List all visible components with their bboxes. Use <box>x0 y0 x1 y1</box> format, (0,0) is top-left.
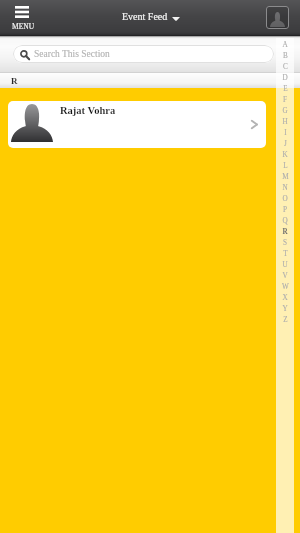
staticText: R <box>282 228 288 236</box>
staticText: P <box>283 206 287 214</box>
staticText: A <box>282 41 288 49</box>
button[interactable]: Event Feed <box>122 11 180 22</box>
staticText: S <box>283 239 287 247</box>
staticText: K <box>282 151 288 159</box>
staticText: Event Feed <box>122 11 168 22</box>
staticText: W <box>282 283 289 291</box>
staticText: C <box>283 63 288 71</box>
staticText: L <box>283 162 288 170</box>
button[interactable]: Rajat Vohra <box>8 101 266 148</box>
staticText: MENU <box>12 22 35 30</box>
staticText: O <box>282 195 288 203</box>
staticText: Q <box>282 217 288 225</box>
staticText: M <box>282 173 289 181</box>
staticText: N <box>282 184 288 192</box>
staticText: Search This Section <box>34 49 110 60</box>
staticText: X <box>282 294 288 302</box>
staticText: G <box>282 107 288 115</box>
button[interactable]: Menu <box>0 0 46 36</box>
button[interactable]: Alphabet index <box>276 38 294 533</box>
staticText: Rajat Vohra <box>60 105 116 117</box>
staticText: T <box>283 250 288 258</box>
staticText: U <box>282 261 288 269</box>
staticText: Z <box>283 316 288 324</box>
staticText: R <box>11 76 18 86</box>
staticText: H <box>282 118 288 126</box>
button[interactable]: Search This Section <box>13 45 274 63</box>
staticText: D <box>282 74 288 82</box>
staticText: I <box>284 129 287 137</box>
staticText: E <box>283 85 288 93</box>
staticText: J <box>284 140 287 148</box>
staticText: B <box>283 52 288 60</box>
staticText: F <box>283 96 287 104</box>
staticText: V <box>282 272 288 280</box>
staticText: Y <box>282 305 288 313</box>
button[interactable]: Profile <box>266 6 289 29</box>
